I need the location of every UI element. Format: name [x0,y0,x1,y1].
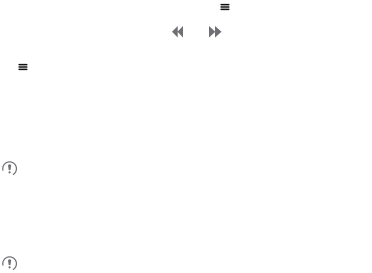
button[interactable]: List [17,62,29,72]
button[interactable]: Alert [0,160,372,177]
button[interactable]: Fast forward [209,26,221,37]
button[interactable]: Alert [0,255,372,272]
button[interactable]: Rewind [172,26,183,37]
button[interactable]: Menu [219,0,239,14]
